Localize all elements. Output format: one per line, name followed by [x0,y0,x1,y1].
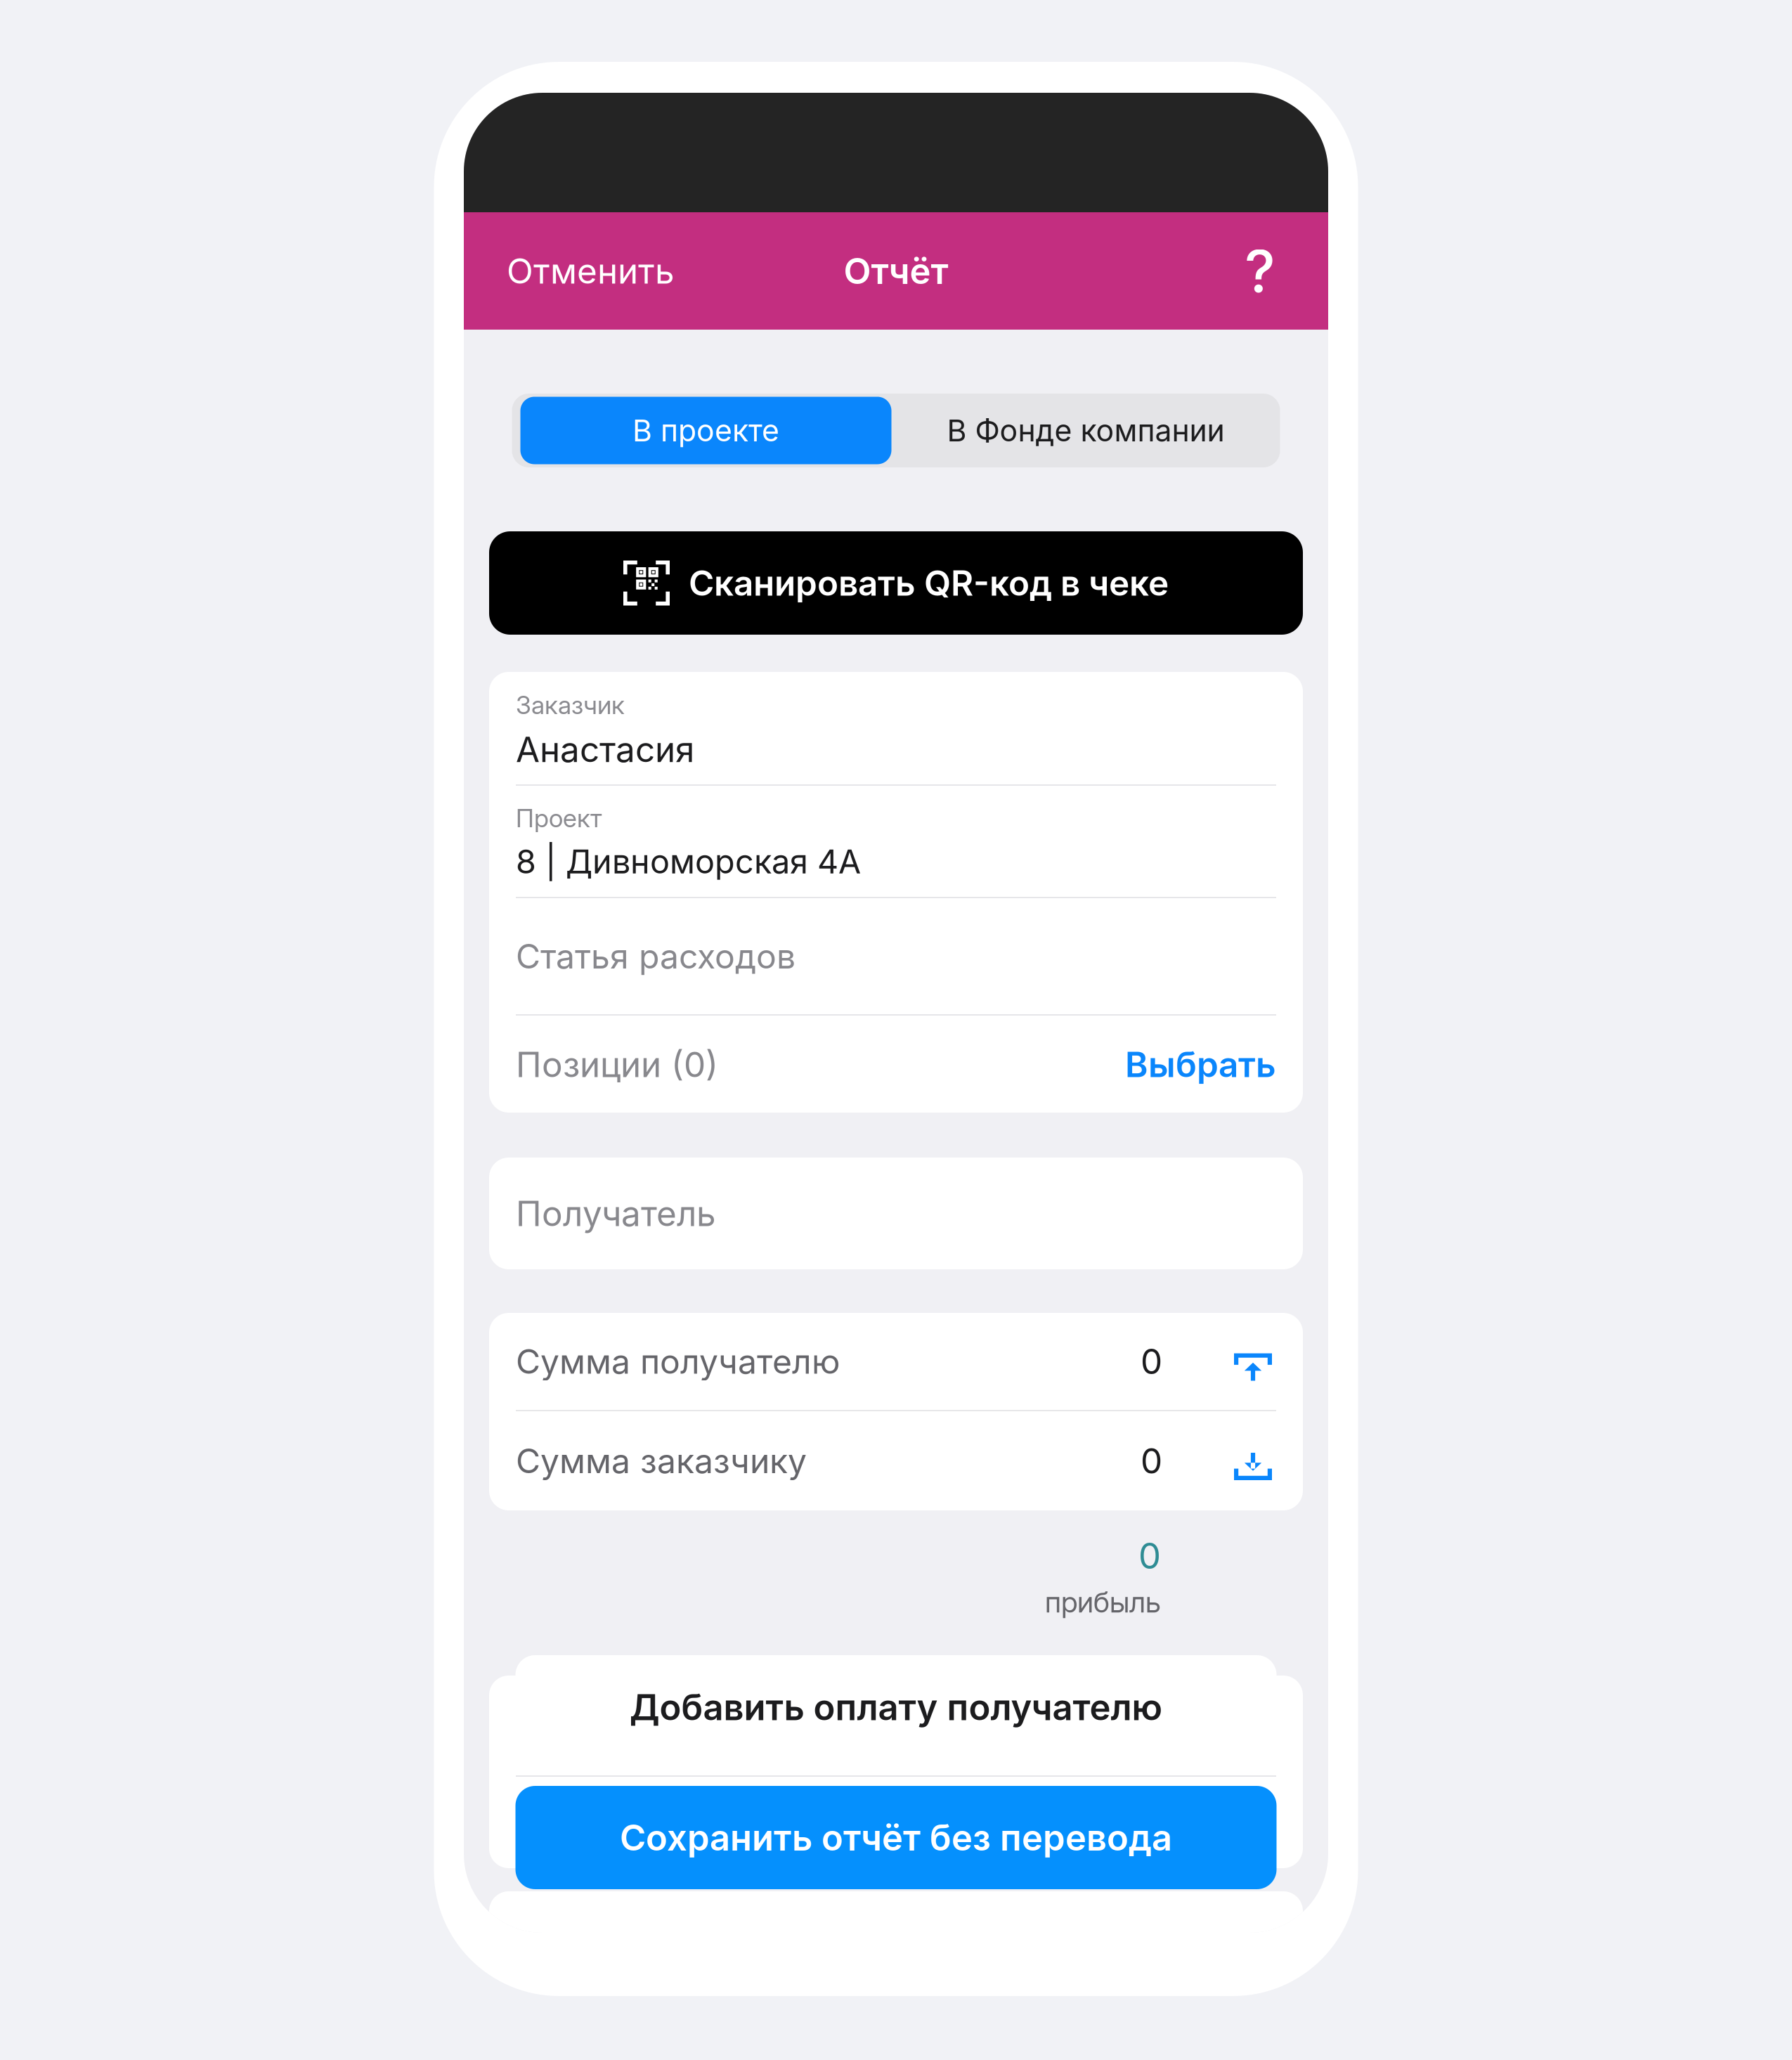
staticText: Анастасия [516,729,694,771]
button[interactable]: Help [1219,218,1328,324]
staticText: прибыль [1045,1584,1161,1619]
staticText: Добавить оплату получателю [629,1686,1163,1729]
staticText: Проект [516,803,602,833]
button[interactable]: Проект [489,786,1303,897]
button[interactable]: Позиции (0) [489,1016,1303,1113]
button[interactable]: В проекте [520,397,891,464]
staticText: Позиции (0) [516,1043,718,1085]
staticText: Заказчик [516,689,625,720]
staticText: Статья расходов [516,936,796,977]
staticText: Сканировать QR-код в чеке [689,562,1169,604]
staticText: Сумма получателю [516,1341,840,1382]
staticText: Выбрать [1125,1043,1276,1085]
button[interactable]: Сканировать QR-код в чеке [489,531,1303,635]
staticText: ? [1245,236,1275,306]
button[interactable]: Статья расходов [489,898,1303,1014]
staticText: Отчёт [844,249,948,292]
staticText: 0 [1141,1340,1162,1382]
button[interactable]: Добавить оплату получателю [515,1655,1277,1759]
staticText: Получатель [516,1192,716,1234]
staticText: Сумма заказчику [516,1440,807,1481]
staticText: В Фонде компании [947,412,1225,449]
staticText: 0 [1138,1534,1161,1577]
staticText: Сохранить отчёт без перевода [620,1816,1172,1859]
button[interactable]: Получатель [489,1158,1303,1269]
staticText: Отменить [507,250,675,292]
staticText: В проекте [632,412,779,449]
button[interactable]: Отменить [464,220,696,321]
staticText: 0 [1141,1440,1162,1482]
button[interactable]: Сумма получателю [489,1313,1303,1410]
button[interactable]: Сохранить отчёт без перевода [515,1786,1277,1889]
staticText: 8 | Дивноморская 4А [516,842,861,881]
button[interactable]: Сумма заказчику [489,1411,1303,1510]
button[interactable]: Заказчик [489,671,1303,784]
button[interactable]: В Фонде компании [891,397,1280,464]
